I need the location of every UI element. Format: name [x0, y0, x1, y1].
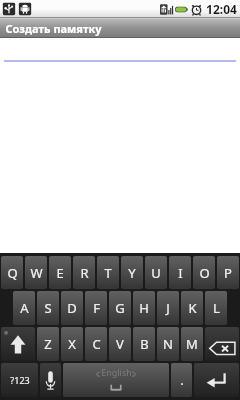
button[interactable]: Delete [205, 327, 239, 361]
staticText: . [180, 371, 184, 389]
button[interactable]: O [193, 256, 215, 289]
button[interactable]: ?123 [1, 363, 38, 397]
button[interactable]: Y [121, 256, 143, 289]
button[interactable]: Q [1, 256, 23, 289]
button[interactable]: H [133, 291, 155, 325]
staticText: Создать памятку [5, 21, 102, 36]
staticText: W [30, 264, 43, 282]
button[interactable]: P [217, 256, 239, 289]
staticText: Y [128, 264, 136, 282]
button[interactable]: K [181, 291, 203, 325]
button[interactable]: X [61, 327, 83, 361]
button[interactable]: J [157, 291, 179, 325]
staticText: K [188, 299, 197, 317]
button[interactable]: A [13, 291, 35, 325]
staticText: U [151, 264, 161, 282]
button[interactable]: . [171, 363, 192, 397]
staticText: E [56, 264, 64, 282]
staticText: ?123 [10, 374, 30, 386]
button[interactable]: B [133, 327, 155, 361]
button[interactable]: Z [37, 327, 59, 361]
button[interactable]: N [157, 327, 179, 361]
button[interactable]: Shift [1, 327, 35, 361]
staticText: Q [7, 264, 18, 282]
button[interactable]: R [73, 256, 95, 289]
button[interactable]: Space [63, 363, 169, 397]
staticText: M [186, 335, 198, 353]
button[interactable]: T [97, 256, 119, 289]
button[interactable]: V [109, 327, 131, 361]
button[interactable]: Enter [194, 363, 239, 397]
staticText: F [93, 299, 100, 317]
button[interactable]: M [181, 327, 203, 361]
staticText: English [101, 366, 132, 378]
button[interactable]: C [85, 327, 107, 361]
button[interactable]: D [61, 291, 83, 325]
button[interactable]: U [145, 256, 167, 289]
staticText: O [199, 264, 210, 282]
staticText: J [166, 299, 170, 317]
button[interactable]: L [205, 291, 227, 325]
staticText: N [163, 335, 173, 353]
button[interactable]: W [25, 256, 47, 289]
staticText: I [178, 264, 183, 282]
button[interactable]: Voice input [40, 363, 61, 397]
staticText: X [68, 335, 76, 353]
staticText: 12:04 [206, 1, 237, 17]
staticText: S [44, 299, 52, 317]
staticText: L [213, 299, 220, 317]
staticText: P [224, 264, 232, 282]
staticText: C [92, 335, 101, 353]
button[interactable]: I [169, 256, 191, 289]
staticText: T [104, 264, 112, 282]
staticText: H [139, 299, 149, 317]
staticText: G [115, 299, 125, 317]
button[interactable]: F [85, 291, 107, 325]
staticText: V [116, 335, 124, 353]
staticText: A [20, 299, 29, 317]
button[interactable]: G [109, 291, 131, 325]
staticText: R [80, 264, 89, 282]
button[interactable]: S [37, 291, 59, 325]
button[interactable] [0, 38, 240, 253]
button[interactable]: E [49, 256, 71, 289]
staticText: Z [44, 335, 52, 353]
staticText: D [67, 299, 77, 317]
staticText: B [140, 335, 149, 353]
